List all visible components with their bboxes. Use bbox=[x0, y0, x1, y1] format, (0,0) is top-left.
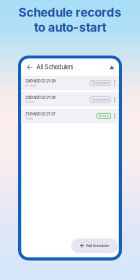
button[interactable]: Sort bbox=[106, 61, 118, 74]
staticText: 21/08/2022 21:27 bbox=[25, 111, 55, 116]
staticText: 5 min bbox=[25, 100, 34, 104]
staticText: Completed bbox=[92, 97, 109, 101]
staticText: 1 min bbox=[25, 117, 33, 120]
button[interactable]: 23/08/2022 21:26 bbox=[21, 92, 119, 107]
staticText: 23/08/2022 21:26 bbox=[25, 95, 55, 100]
staticText: to auto-start bbox=[34, 20, 106, 34]
staticText: Schedule records bbox=[18, 5, 121, 19]
button[interactable]: 23/08/2022 21:29 bbox=[21, 76, 119, 90]
button[interactable]: Back bbox=[23, 61, 36, 74]
button[interactable]: Add Scheduler bbox=[71, 238, 118, 253]
staticText: Completed bbox=[92, 81, 109, 85]
staticText: Add Scheduler bbox=[86, 244, 109, 248]
staticText: 27 min bbox=[25, 84, 36, 87]
button[interactable]: 21/08/2022 21:27 bbox=[21, 109, 119, 123]
staticText: All Schedulers bbox=[36, 64, 73, 71]
staticText: Active bbox=[99, 114, 109, 118]
staticText: 23/08/2022 21:29 bbox=[25, 78, 55, 83]
